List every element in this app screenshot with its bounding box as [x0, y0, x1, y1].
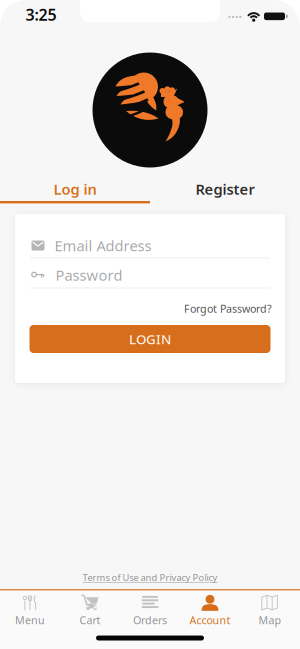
staticText: Terms of Use and Privacy Policy — [82, 571, 217, 584]
button[interactable]: Cart — [62, 591, 118, 631]
staticText: Email Address — [54, 236, 151, 255]
staticText: 3:25 — [25, 4, 56, 25]
button[interactable]: Account — [182, 591, 238, 631]
button[interactable]: Forgot Password? — [184, 301, 272, 316]
staticText: Account — [189, 613, 230, 627]
staticText: Log in — [53, 179, 96, 199]
button[interactable]: Log in — [0, 172, 150, 206]
staticText: Password — [55, 265, 122, 285]
button[interactable]: Map — [242, 591, 298, 631]
staticText: Orders — [133, 613, 167, 627]
staticText: Map — [258, 613, 281, 627]
button[interactable]: Terms of Use and Privacy Policy — [82, 571, 217, 584]
button[interactable]: Register — [150, 172, 300, 206]
button[interactable]: LOGIN — [29, 325, 270, 353]
staticText: Register — [195, 179, 254, 199]
staticText: LOGIN — [129, 330, 171, 348]
button[interactable]: Orders — [122, 591, 178, 631]
staticText: Cart — [79, 613, 100, 627]
staticText: Menu — [15, 613, 45, 627]
staticText: Forgot Password? — [184, 301, 272, 316]
button[interactable]: Menu — [2, 591, 58, 631]
